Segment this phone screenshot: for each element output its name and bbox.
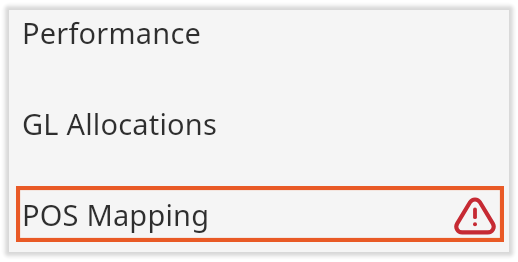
- staticText: GL Allocations: [22, 104, 218, 143]
- other: Warning: [452, 195, 498, 236]
- button[interactable]: POS Mapping: [16, 186, 504, 242]
- button[interactable]: GL Allocations: [9, 101, 509, 146]
- button[interactable]: Performance: [9, 10, 509, 55]
- staticText: Performance: [22, 13, 202, 52]
- staticText: POS Mapping: [22, 195, 210, 234]
